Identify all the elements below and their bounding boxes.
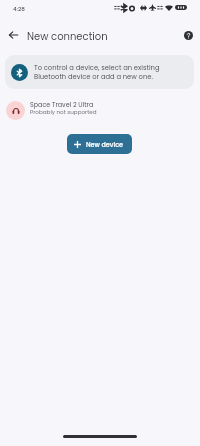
button[interactable]: Space Travel 2 Ultra xyxy=(0,96,200,124)
staticText: Probably not supported xyxy=(30,108,97,116)
staticText: New device xyxy=(86,140,123,149)
button[interactable]: Back xyxy=(4,26,22,44)
button[interactable]: To control a device, select an existing … xyxy=(5,55,194,89)
button[interactable]: New device xyxy=(67,134,132,154)
button[interactable]: Help xyxy=(180,27,196,43)
staticText: New connection xyxy=(27,29,108,43)
staticText: To control a device, select an existing … xyxy=(34,63,162,81)
staticText: 4:28 xyxy=(13,5,25,13)
staticText: Space Travel 2 Ultra xyxy=(30,100,94,109)
